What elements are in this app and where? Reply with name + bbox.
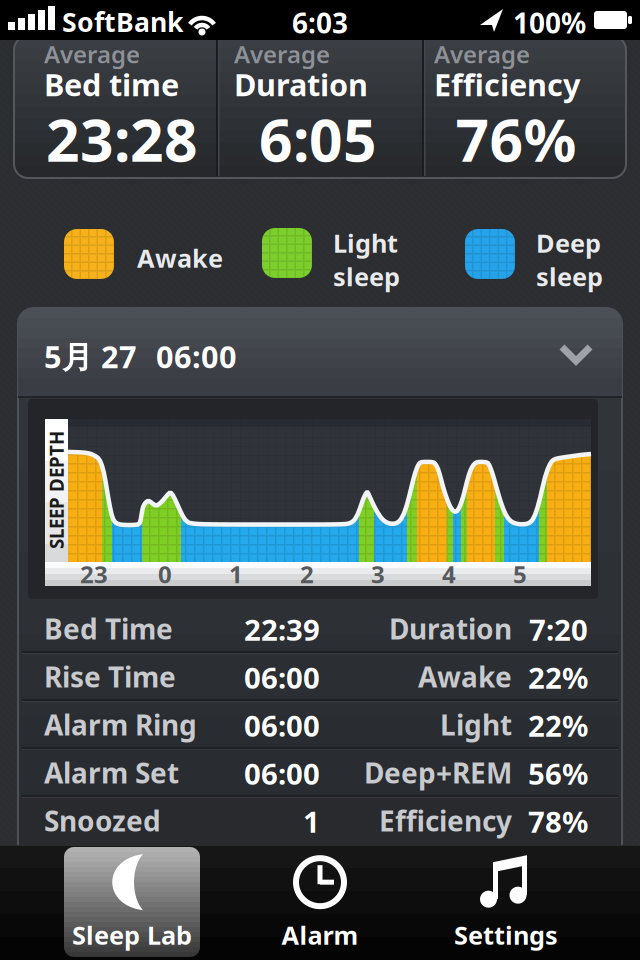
- staticText: Sleep Lab: [72, 918, 192, 952]
- staticText: 22:39: [244, 610, 320, 649]
- staticText: 100%: [513, 4, 586, 41]
- staticText: 22%: [528, 706, 588, 745]
- staticText: Settings: [454, 918, 558, 952]
- staticText: Deep sleep: [536, 226, 603, 293]
- staticText: Average: [234, 38, 330, 70]
- staticText: Alarm Ring: [44, 706, 197, 743]
- button[interactable]: Sleep Lab: [64, 847, 200, 957]
- staticText: 78%: [528, 802, 588, 841]
- staticText: 1: [229, 558, 243, 590]
- staticText: 06:00: [244, 754, 320, 793]
- staticText: Awake: [418, 658, 512, 695]
- staticText: SoftBank: [62, 4, 184, 39]
- staticText: SLEEP DEPTH: [0, 478, 115, 502]
- staticText: Bed time: [44, 64, 179, 105]
- button[interactable]: Toggle day details: [18, 308, 622, 398]
- staticText: Deep+REM: [364, 754, 512, 791]
- staticText: 23:28: [46, 100, 198, 178]
- staticText: 0: [158, 558, 172, 590]
- staticText: Alarm: [281, 918, 358, 952]
- staticText: 5: [513, 558, 527, 590]
- staticText: 76%: [455, 100, 576, 178]
- staticText: 06:00: [244, 706, 320, 745]
- staticText: Light sleep: [333, 226, 400, 293]
- staticText: 22%: [528, 658, 588, 697]
- staticText: Average: [44, 38, 140, 70]
- staticText: 5月 27: [44, 336, 137, 377]
- staticText: 56%: [528, 754, 588, 793]
- staticText: Awake: [137, 241, 223, 275]
- staticText: 2: [300, 558, 314, 590]
- staticText: 3: [371, 558, 385, 590]
- staticText: Efficiency: [379, 802, 512, 839]
- staticText: Alarm Set: [44, 754, 179, 791]
- staticText: 6:05: [259, 100, 377, 178]
- staticText: 6:03: [292, 4, 348, 41]
- button[interactable]: Settings: [436, 847, 576, 957]
- staticText: 23: [80, 558, 108, 590]
- staticText: Bed Time: [44, 610, 173, 647]
- staticText: 7:20: [529, 610, 588, 649]
- staticText: Duration: [389, 610, 512, 647]
- staticText: 06:00: [156, 336, 237, 377]
- staticText: 1: [303, 802, 320, 841]
- staticText: Average: [434, 38, 530, 70]
- staticText: Efficiency: [434, 64, 581, 105]
- staticText: 4: [442, 558, 456, 590]
- staticText: Duration: [234, 64, 368, 105]
- staticText: 06:00: [244, 658, 320, 697]
- staticText: Snoozed: [44, 802, 161, 839]
- staticText: Light: [440, 706, 512, 743]
- button[interactable]: Alarm: [250, 847, 390, 957]
- staticText: Rise Time: [44, 658, 176, 695]
